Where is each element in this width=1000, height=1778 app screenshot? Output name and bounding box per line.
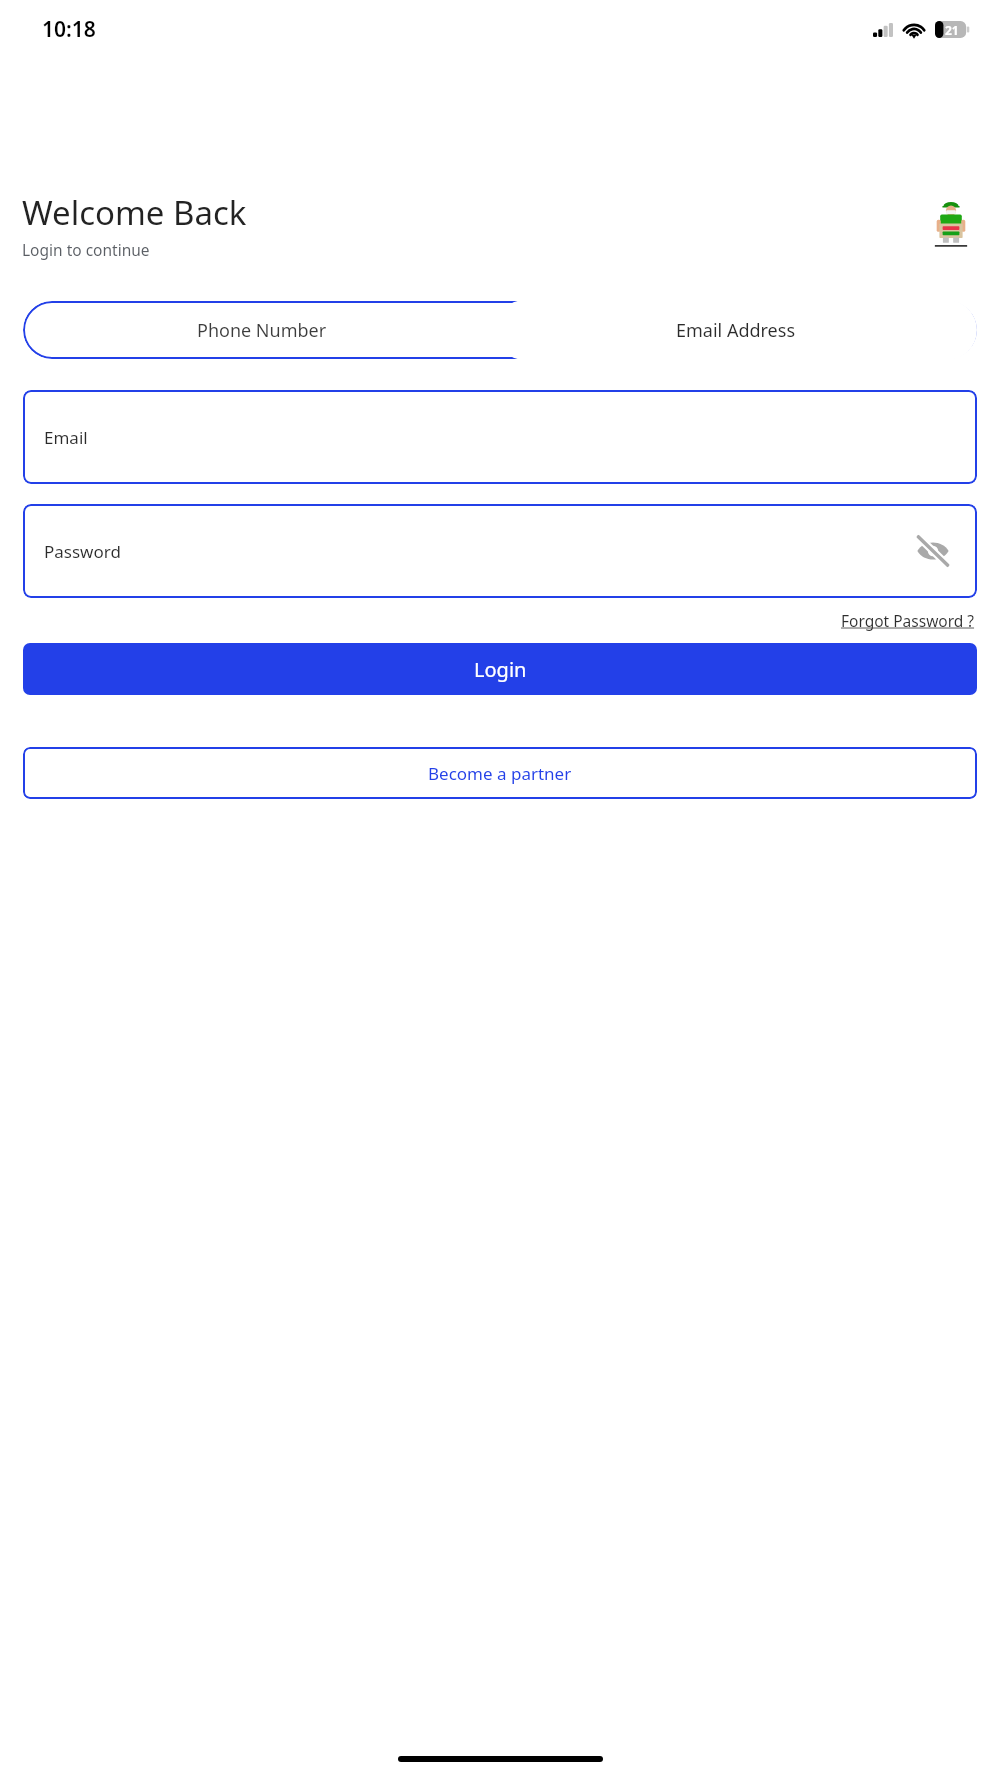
- staticText: Email: [44, 426, 88, 449]
- staticText: Login to continue: [22, 239, 150, 260]
- button[interactable]: Password: [23, 504, 977, 598]
- button[interactable]: Email Address: [495, 300, 977, 360]
- staticText: 10:18: [42, 15, 96, 44]
- button[interactable]: Phone Number: [23, 301, 500, 359]
- staticText: Welcome Back: [22, 190, 247, 235]
- button[interactable]: Email: [23, 390, 977, 484]
- staticText: Forgot Password ?: [841, 610, 975, 631]
- staticText: 21: [945, 22, 959, 38]
- staticText: Become a partner: [428, 762, 572, 785]
- staticText: Login: [474, 656, 527, 683]
- button[interactable]: Login: [23, 643, 977, 695]
- staticText: Phone Number: [197, 318, 327, 343]
- staticText: Password: [44, 540, 121, 563]
- staticText: Email Address: [676, 318, 796, 343]
- button[interactable]: Forgot Password ?: [839, 607, 977, 634]
- button[interactable]: Show password: [911, 529, 955, 573]
- button[interactable]: Become a partner: [23, 747, 977, 799]
